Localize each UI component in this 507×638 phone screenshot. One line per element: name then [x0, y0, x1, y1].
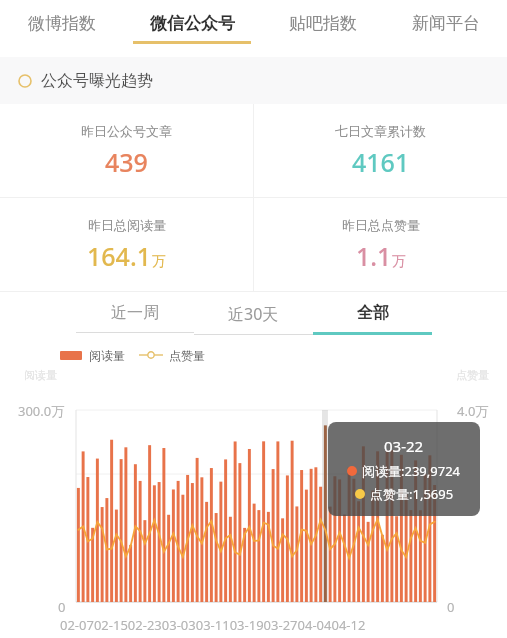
staticText: 近一周	[111, 303, 159, 323]
staticText: 点赞量:1,5695	[370, 485, 454, 503]
staticText: 点赞量	[456, 368, 489, 382]
staticText: 0	[58, 598, 66, 616]
staticText: 新闻平台	[412, 13, 480, 34]
staticText: 万	[152, 253, 166, 271]
staticText: 03-22	[384, 436, 424, 456]
staticText: 02-0702-1502-2303-0303-1103-1903-2704-04…	[60, 616, 366, 634]
button[interactable]: 03-22	[328, 422, 480, 516]
staticText: 公众号曝光趋势	[41, 71, 153, 91]
button[interactable]: 七日文章累计数	[254, 104, 507, 197]
button[interactable]: 近一周	[76, 292, 194, 342]
staticText: 164.1	[87, 239, 152, 273]
staticText: 点赞量	[169, 348, 205, 363]
staticText: 4161	[352, 145, 410, 179]
button[interactable]: 微博指数	[0, 0, 123, 57]
staticText: 1.1	[356, 239, 392, 273]
staticText: 阅读量	[24, 368, 57, 382]
button[interactable]: 昨日公众号文章	[0, 104, 253, 197]
button[interactable]: 新闻平台	[384, 0, 507, 57]
staticText: 0	[447, 598, 455, 616]
staticText: 万	[392, 253, 406, 271]
staticText: 昨日总点赞量	[342, 217, 420, 233]
staticText: 昨日总阅读量	[88, 217, 166, 233]
staticText: 4.0万	[457, 402, 489, 420]
button[interactable]: 近30天	[194, 292, 313, 342]
staticText: 300.0万	[18, 402, 65, 420]
staticText: 近30天	[228, 303, 279, 325]
staticText: 七日文章累计数	[335, 123, 426, 139]
staticText: 439	[105, 145, 148, 179]
button[interactable]: 贴吧指数	[261, 0, 384, 57]
button[interactable]: 昨日总阅读量	[0, 198, 253, 291]
button[interactable]: 昨日总点赞量	[254, 198, 507, 291]
staticText: 微信公众号	[150, 13, 235, 34]
button[interactable]: 微信公众号	[123, 0, 261, 57]
staticText: 全部	[357, 303, 389, 323]
staticText: 微博指数	[28, 13, 96, 34]
button[interactable]: 全部	[313, 292, 432, 342]
staticText: 阅读量	[89, 348, 125, 363]
staticText: 昨日公众号文章	[81, 123, 172, 139]
staticText: 贴吧指数	[289, 13, 357, 34]
staticText: 阅读量:239,9724	[362, 462, 461, 480]
